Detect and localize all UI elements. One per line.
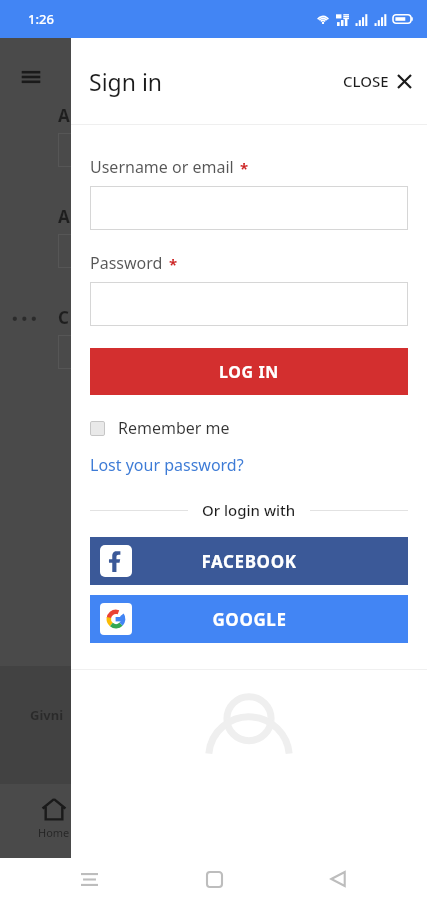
- button[interactable]: [90, 186, 408, 230]
- button[interactable]: Home: [197, 862, 231, 896]
- staticText: Or login with: [202, 500, 296, 520]
- staticText: LOG IN: [219, 361, 279, 383]
- staticText: 1:26: [28, 10, 54, 28]
- staticText: Home: [38, 825, 70, 840]
- button[interactable]: Back: [321, 862, 355, 896]
- staticText: Username or email: [90, 156, 234, 178]
- staticText: *: [240, 158, 249, 178]
- other: Menu: [16, 62, 46, 92]
- button[interactable]: Remember me: [90, 414, 230, 442]
- button[interactable]: FACEBOOK: [90, 537, 408, 585]
- staticText: Sign in: [89, 66, 163, 97]
- staticText: Lost your password?: [90, 454, 244, 476]
- staticText: CLOSE: [343, 71, 389, 91]
- staticText: A: [58, 205, 70, 228]
- staticText: GOOGLE: [212, 608, 287, 631]
- button[interactable]: [90, 282, 408, 326]
- staticText: Remember me: [118, 417, 230, 439]
- staticText: *: [169, 254, 178, 274]
- button[interactable]: GOOGLE: [90, 595, 408, 643]
- staticText: Givni: [30, 706, 64, 724]
- staticText: Password: [90, 252, 163, 274]
- button[interactable]: Recent apps: [72, 862, 106, 896]
- staticText: • • •: [12, 308, 37, 328]
- staticText: C: [58, 306, 69, 329]
- staticText: A: [58, 104, 70, 127]
- button[interactable]: CLOSE: [327, 61, 427, 101]
- button[interactable]: LOG IN: [90, 348, 408, 395]
- staticText: FACEBOOK: [201, 550, 297, 573]
- button[interactable]: Lost your password?: [90, 452, 244, 478]
